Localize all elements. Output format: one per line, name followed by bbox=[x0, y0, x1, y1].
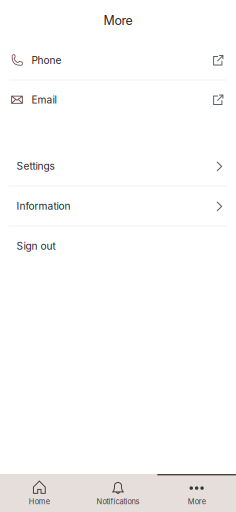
button[interactable]: Sign out bbox=[0, 226, 236, 265]
staticText: Email bbox=[31, 94, 56, 106]
staticText: Notifications bbox=[96, 497, 139, 506]
button[interactable]: More bbox=[157, 474, 236, 512]
staticText: Settings bbox=[16, 160, 54, 172]
button[interactable]: Phone bbox=[0, 41, 236, 79]
staticText: More bbox=[188, 497, 206, 506]
button[interactable]: Email bbox=[0, 80, 236, 119]
button[interactable]: Home bbox=[0, 474, 79, 512]
staticText: Phone bbox=[31, 54, 61, 66]
staticText: More bbox=[103, 13, 132, 28]
staticText: Sign out bbox=[16, 240, 55, 252]
staticText: Information bbox=[16, 200, 70, 212]
button[interactable]: Information bbox=[0, 186, 236, 225]
button[interactable]: Notifications bbox=[79, 474, 157, 512]
staticText: Home bbox=[29, 497, 50, 506]
button[interactable]: Settings bbox=[0, 146, 236, 185]
